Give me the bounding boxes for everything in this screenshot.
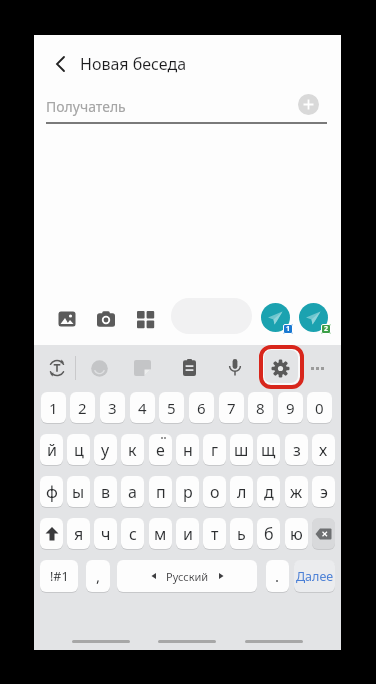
staticText: г (211, 439, 219, 461)
button[interactable]: т (203, 518, 226, 549)
button[interactable] (229, 359, 241, 378)
button[interactable]: г (203, 434, 226, 465)
staticText: 8 (256, 398, 265, 418)
button[interactable]: э (312, 476, 335, 507)
staticText: 5 (167, 398, 176, 418)
button[interactable]: р (176, 476, 199, 507)
staticText: ж (290, 481, 303, 503)
button[interactable] (58, 310, 76, 328)
staticText: з (293, 439, 301, 461)
staticText: Далее (296, 568, 334, 585)
button[interactable]: Русский (117, 560, 257, 592)
staticText: 2 (78, 398, 87, 418)
button[interactable]: 4 (130, 392, 155, 423)
button[interactable]: 2 (70, 392, 95, 423)
button[interactable]: н (176, 434, 199, 465)
staticText: ф (46, 481, 58, 503)
staticText: ь (237, 523, 246, 545)
button[interactable]: а (121, 476, 144, 507)
button[interactable]: щ (257, 434, 280, 465)
button[interactable] (298, 94, 319, 115)
button[interactable]: у (94, 434, 117, 465)
button[interactable]: 8 (248, 392, 273, 423)
button[interactable]: й (40, 434, 63, 465)
staticText: Новая беседа (80, 53, 187, 75)
button[interactable] (72, 640, 130, 643)
button[interactable] (299, 303, 328, 332)
button[interactable]: 9 (278, 392, 303, 423)
staticText: ц (74, 439, 84, 461)
button[interactable]: 0 (307, 392, 332, 423)
button[interactable] (137, 311, 155, 329)
staticText: 6 (197, 398, 206, 418)
staticText: о (210, 481, 220, 503)
button[interactable]: !#1 (40, 560, 78, 592)
button[interactable] (48, 359, 66, 377)
button[interactable]: 6 (189, 392, 214, 423)
button[interactable]: 7 (219, 392, 244, 423)
button[interactable]: з (285, 434, 308, 465)
staticText: н (183, 439, 193, 461)
staticText: к (128, 439, 137, 461)
staticText: м (154, 523, 167, 545)
button[interactable]: с (121, 518, 144, 549)
button[interactable]: ш (230, 434, 253, 465)
staticText: 2 (324, 324, 329, 334)
button[interactable]: х (312, 434, 335, 465)
staticText: !#1 (50, 568, 69, 585)
staticText: 9 (286, 398, 295, 418)
staticText: 4 (138, 398, 147, 418)
staticText: ю (290, 523, 303, 545)
button[interactable] (158, 640, 216, 643)
button[interactable] (134, 360, 151, 376)
button[interactable]: п (149, 476, 172, 507)
button[interactable] (183, 359, 196, 376)
button[interactable] (91, 360, 108, 377)
button[interactable]: о (203, 476, 226, 507)
staticText: ч (101, 523, 111, 545)
button[interactable]: 5 (159, 392, 184, 423)
staticText: э (320, 481, 328, 503)
button[interactable]: ю (285, 518, 308, 549)
staticText: й (47, 439, 57, 461)
button[interactable]: е (149, 434, 172, 465)
staticText: щ (261, 439, 276, 461)
staticText: 1 (286, 324, 291, 334)
button[interactable]: Далее (294, 560, 335, 592)
button[interactable]: м (149, 518, 172, 549)
button[interactable] (312, 518, 335, 549)
button[interactable]: ц (67, 434, 90, 465)
button[interactable]: л (230, 476, 253, 507)
button[interactable]: д (257, 476, 280, 507)
staticText: п (156, 481, 166, 503)
button[interactable] (271, 359, 290, 378)
button[interactable]: 1 (41, 392, 66, 423)
button[interactable]: , (86, 560, 110, 592)
staticText: б (264, 523, 274, 545)
staticText: ш (234, 439, 249, 461)
button[interactable]: 3 (100, 392, 125, 423)
staticText: , (96, 566, 101, 586)
staticText: ы (72, 481, 85, 503)
button[interactable]: ж (285, 476, 308, 507)
button[interactable]: . (266, 560, 289, 592)
button[interactable]: ч (94, 518, 117, 549)
button[interactable] (40, 518, 63, 549)
button[interactable]: б (257, 518, 280, 549)
button[interactable] (48, 51, 74, 77)
button[interactable]: ь (230, 518, 253, 549)
button[interactable]: к (121, 434, 144, 465)
button[interactable] (245, 640, 303, 643)
staticText: т (211, 523, 219, 545)
button[interactable]: ф (40, 476, 63, 507)
button[interactable] (171, 298, 252, 334)
button[interactable]: и (176, 518, 199, 549)
button[interactable] (261, 303, 290, 332)
button[interactable]: ы (67, 476, 90, 507)
button[interactable]: я (67, 518, 90, 549)
staticText: 7 (227, 398, 236, 418)
staticText: с (129, 523, 137, 545)
button[interactable]: в (94, 476, 117, 507)
staticText: е (156, 439, 165, 461)
button[interactable] (97, 311, 115, 329)
